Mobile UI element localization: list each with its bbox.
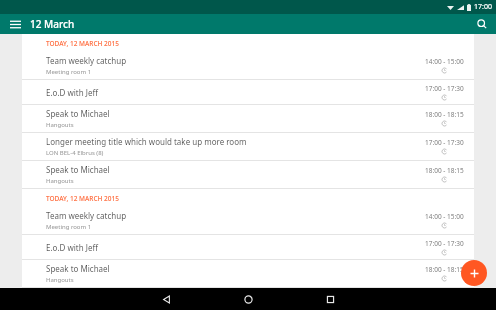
staticText: Hangouts xyxy=(46,276,74,284)
button[interactable]: Create event xyxy=(461,260,487,286)
staticText: Speak to Michael xyxy=(46,108,110,119)
button[interactable]: Speak to Michael xyxy=(22,260,474,287)
button[interactable]: Team weekly catchup xyxy=(22,207,474,234)
button[interactable]: E.o.D with Jeff xyxy=(22,80,474,104)
staticText: 17:00 - 17:30 xyxy=(425,84,464,93)
button[interactable]: Speak to Michael xyxy=(22,161,474,188)
staticText: Speak to Michael xyxy=(46,263,110,274)
staticText: Speak to Michael xyxy=(46,164,110,175)
staticText: 17:00 - 17:30 xyxy=(425,138,464,147)
button[interactable]: Search xyxy=(473,15,491,33)
staticText: LON BEL-4 Elbrus (8) xyxy=(46,149,104,157)
button[interactable]: Speak to Michael xyxy=(22,105,474,132)
staticText: 18:00 - 18:15 xyxy=(425,166,464,175)
staticText: Longer meeting title which would take up… xyxy=(46,136,247,147)
button[interactable]: Open navigation drawer xyxy=(6,15,24,33)
button[interactable]: E.o.D with Jeff xyxy=(22,235,474,259)
button[interactable]: Home xyxy=(231,288,265,310)
button[interactable]: Back xyxy=(149,288,183,310)
staticText: 14:00 - 15:00 xyxy=(425,57,464,66)
staticText: TODAY, 12 MARCH 2015 xyxy=(46,39,119,48)
staticText: 17:00 - 17:30 xyxy=(425,239,464,248)
staticText: E.o.D with Jeff xyxy=(46,242,98,253)
staticText: 18:00 - 18:15 xyxy=(425,110,464,119)
staticText: 17:00 xyxy=(474,2,492,12)
staticText: 14:00 - 15:00 xyxy=(425,212,464,221)
staticText: Meeting room 1 xyxy=(46,68,92,76)
button[interactable]: Recent apps xyxy=(313,288,347,310)
staticText: Hangouts xyxy=(46,121,74,129)
staticText: Meeting room 1 xyxy=(46,223,92,231)
staticText: 12 March xyxy=(30,17,75,31)
staticText: E.o.D with Jeff xyxy=(46,87,98,98)
button[interactable]: Longer meeting title which would take up… xyxy=(22,133,474,160)
staticText: TODAY, 12 MARCH 2015 xyxy=(46,194,119,203)
staticText: 18:00 - 18:15 xyxy=(425,265,464,274)
staticText: Team weekly catchup xyxy=(46,210,127,221)
button[interactable]: Team weekly catchup xyxy=(22,52,474,79)
staticText: Team weekly catchup xyxy=(46,55,127,66)
staticText: Hangouts xyxy=(46,177,74,185)
